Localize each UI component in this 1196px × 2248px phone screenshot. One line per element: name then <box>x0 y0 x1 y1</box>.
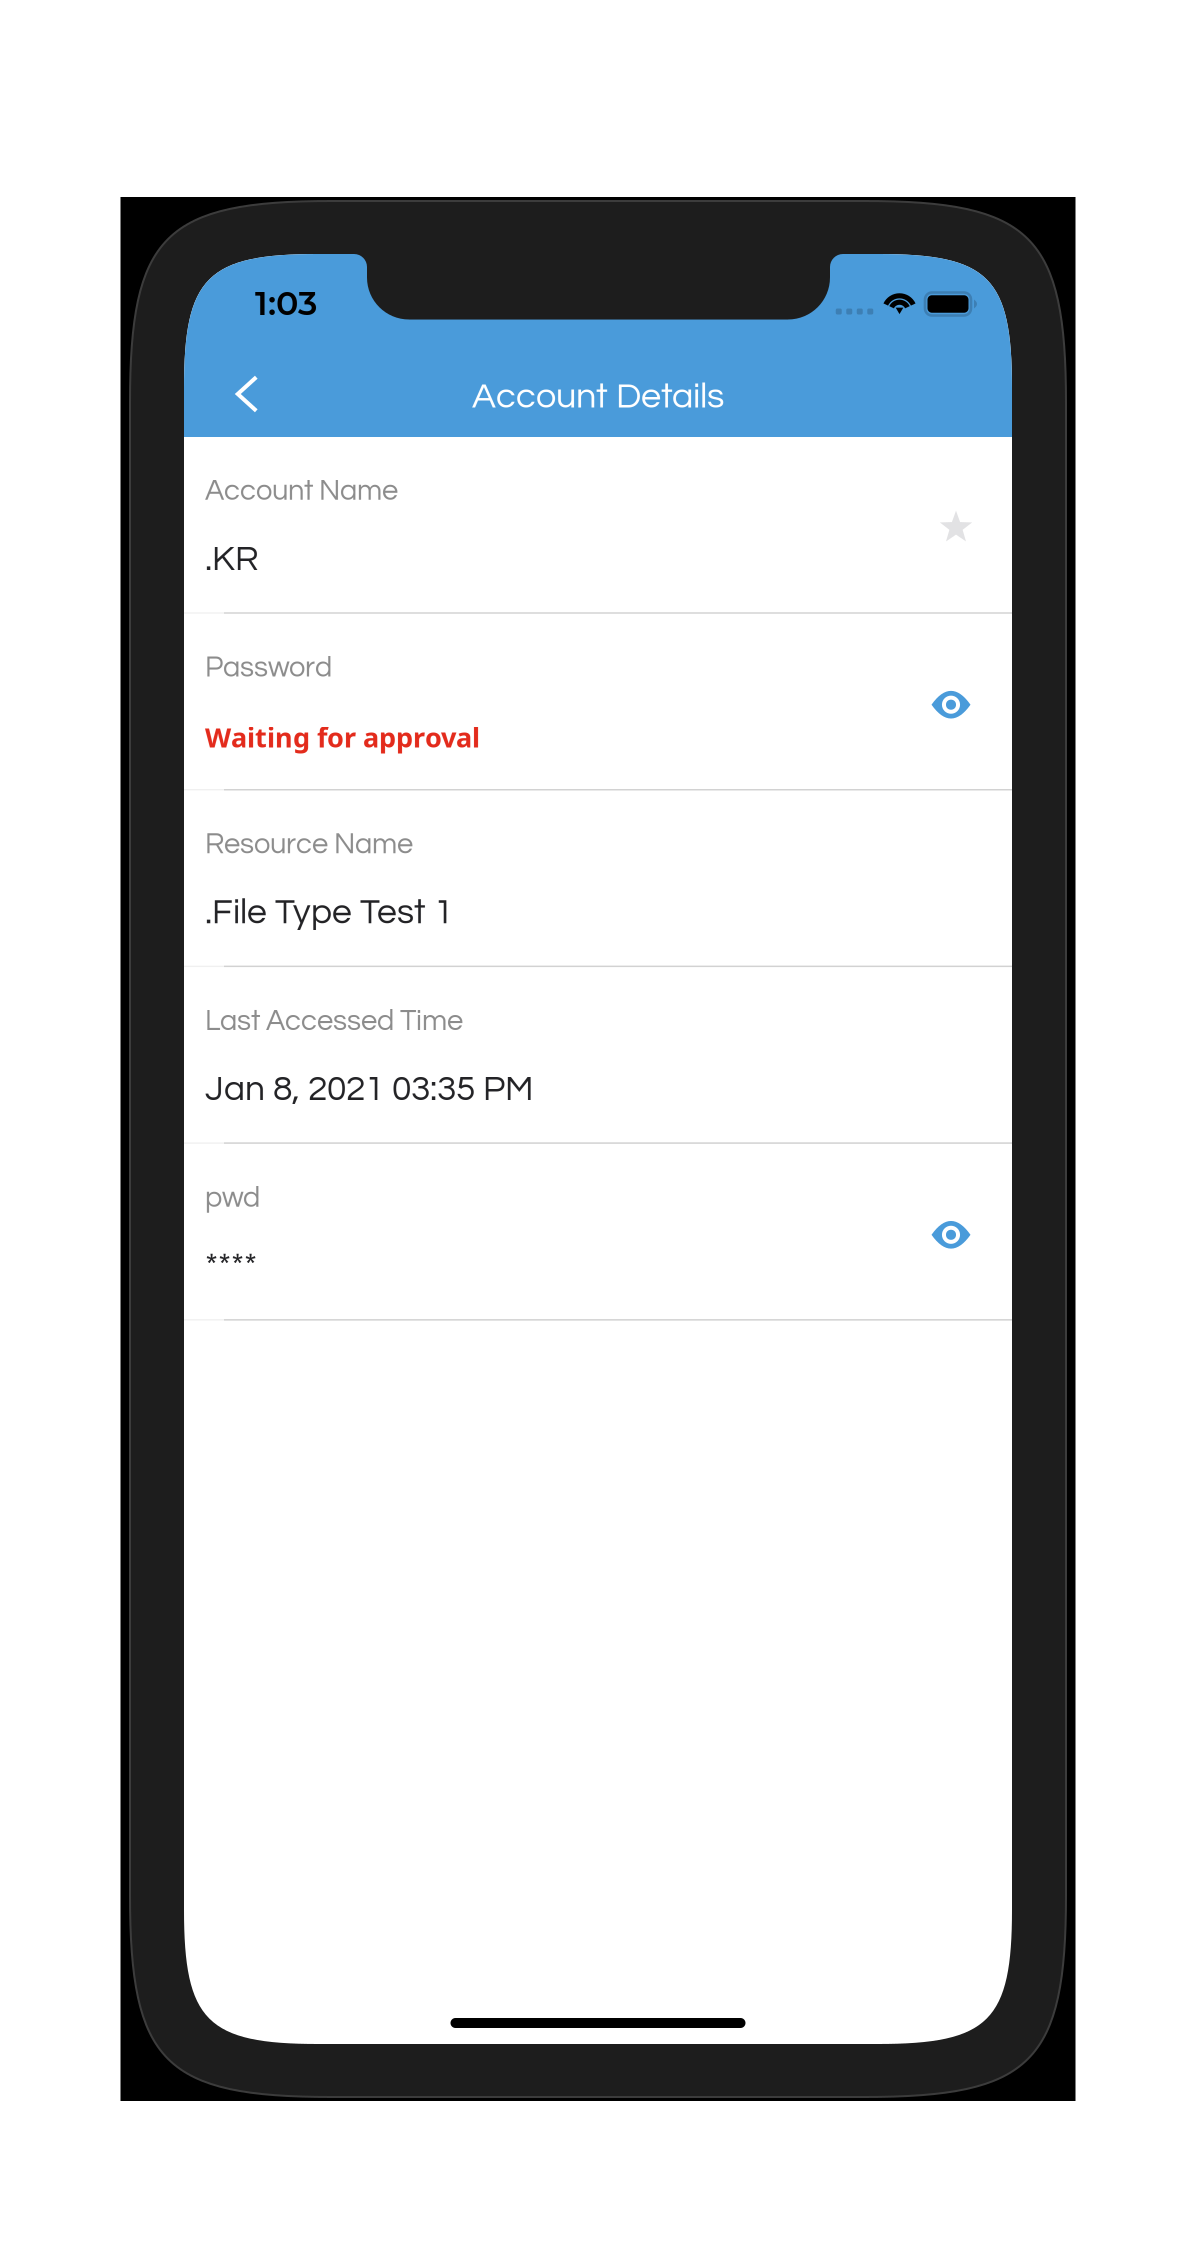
staticText: Resource Name <box>205 829 413 859</box>
staticText: 1:03 <box>255 283 317 323</box>
button[interactable]: Back <box>204 351 290 437</box>
staticText: Waiting for approval <box>205 719 480 755</box>
staticText: Account Details <box>472 378 724 415</box>
staticText: .File Type Test 1 <box>205 894 453 931</box>
button[interactable]: Favourite <box>920 491 992 563</box>
staticText: **** <box>205 1248 257 1284</box>
staticText: Jan 8, 2021 03:35 PM <box>205 1071 533 1107</box>
staticText: Password <box>205 653 332 683</box>
staticText: Account Name <box>205 476 398 506</box>
staticText: pwd <box>205 1183 260 1213</box>
button[interactable]: Show pwd <box>915 1199 987 1271</box>
button[interactable]: Show password <box>915 669 987 741</box>
staticText: .KR <box>205 541 259 577</box>
staticText: Last Accessed Time <box>205 1006 463 1036</box>
